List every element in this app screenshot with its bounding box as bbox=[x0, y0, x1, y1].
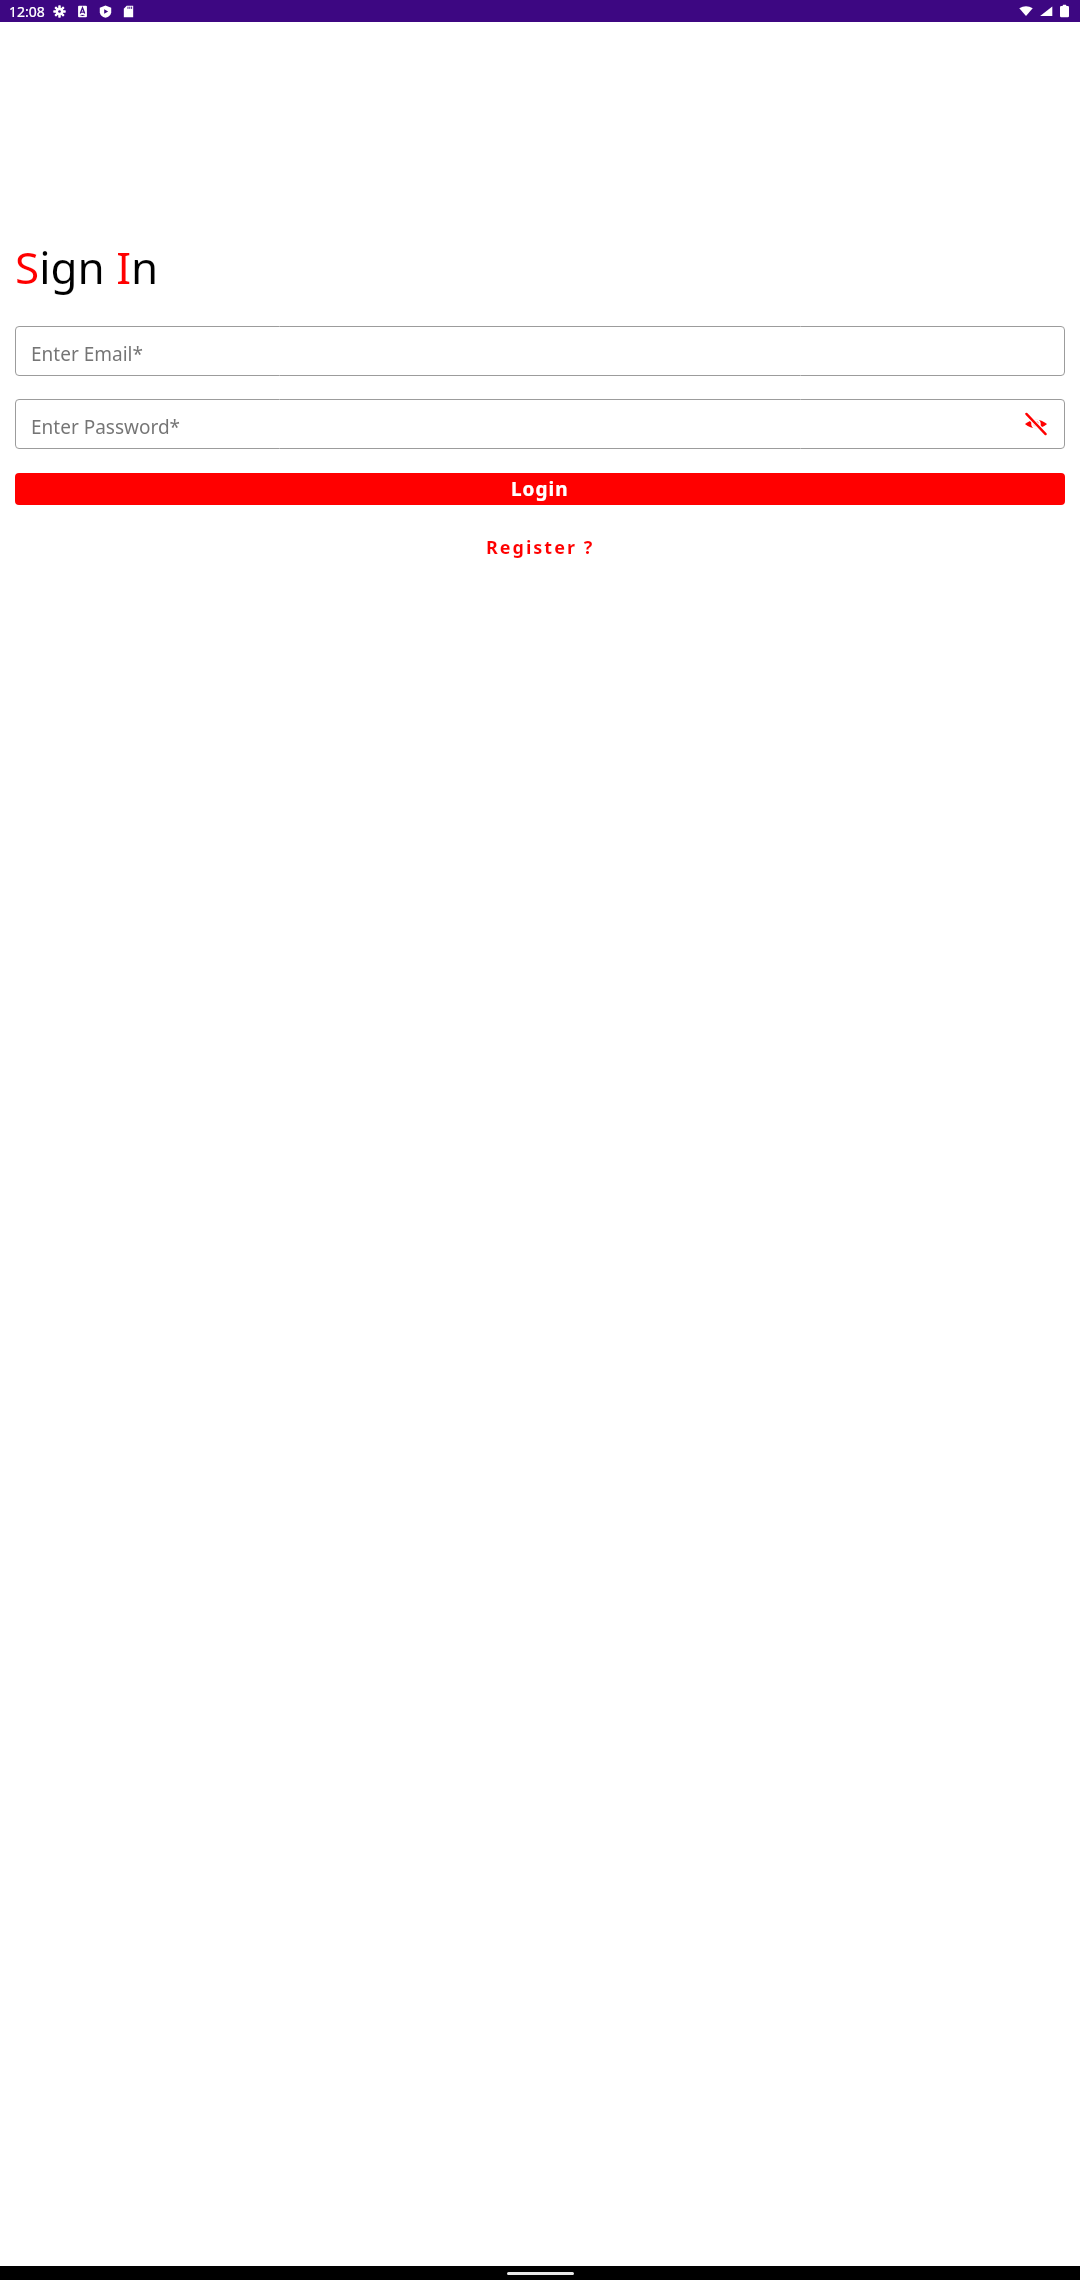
staticText: Enter Password* bbox=[31, 414, 181, 440]
staticText: Enter Email* bbox=[31, 341, 143, 367]
button[interactable]: Enter Password* bbox=[15, 399, 1065, 449]
button[interactable]: Register ? bbox=[474, 529, 607, 566]
button[interactable]: Toggle password visibility bbox=[1019, 407, 1053, 441]
staticText: Login bbox=[511, 476, 569, 502]
button[interactable]: Enter Email* bbox=[15, 326, 1065, 376]
staticText: Register ? bbox=[486, 535, 595, 560]
staticText: Sign In bbox=[15, 237, 159, 297]
button[interactable]: Login bbox=[15, 473, 1065, 505]
staticText: 12:08 bbox=[9, 2, 45, 21]
